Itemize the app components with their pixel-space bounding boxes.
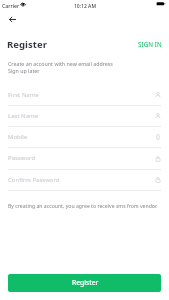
staticText: By creating an account, you agree to rec… [8, 202, 158, 209]
button[interactable]: Confirm Password [0, 169, 169, 190]
staticText: First Name [8, 91, 39, 99]
staticText: SIGN IN [138, 40, 162, 48]
staticText: Register [7, 38, 47, 51]
staticText: 10:12 AM [74, 3, 96, 10]
staticText: Create an account with new email address [8, 60, 113, 67]
staticText: Carrier [2, 2, 20, 9]
staticText: Password [8, 154, 36, 162]
button[interactable]: Mobile [0, 126, 169, 147]
staticText: Last Name [8, 112, 39, 120]
button[interactable]: Register [8, 274, 161, 292]
button[interactable]: Back [4, 13, 20, 26]
staticText: Mobile [8, 133, 28, 141]
button[interactable]: Last Name [0, 105, 169, 126]
staticText: Register [72, 278, 99, 287]
staticText: Confirm Password [8, 176, 60, 184]
button[interactable]: SIGN IN [138, 40, 162, 48]
button[interactable]: First Name [0, 84, 169, 105]
staticText: Sign up later [8, 67, 40, 74]
button[interactable]: Password [0, 147, 169, 169]
